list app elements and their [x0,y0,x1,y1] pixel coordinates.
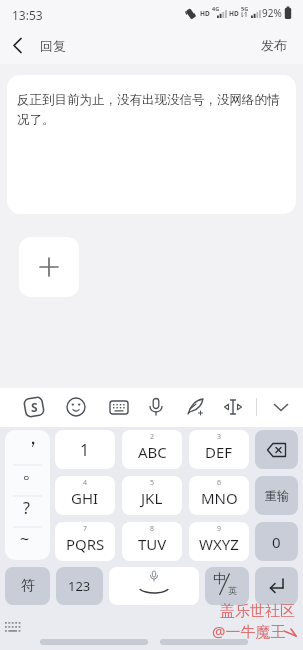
staticText: MNO [201,488,238,508]
staticText: 6 [217,478,222,488]
button[interactable] [6,34,30,58]
button[interactable]: 3 [189,430,249,469]
staticText: 3 [217,432,222,442]
button[interactable]: 5 [122,476,182,515]
staticText: 13:53 [12,7,43,23]
staticText: 5 [150,478,155,488]
button[interactable]: 7 [55,522,115,561]
button[interactable]: S [22,395,46,419]
staticText: PQRS [66,534,105,554]
staticText: 4 [83,478,88,488]
staticText: 5G [241,5,249,12]
button[interactable] [107,395,131,419]
staticText: 英 [228,585,237,596]
button[interactable] [64,395,88,419]
button[interactable]: 发布 [250,30,298,60]
button[interactable] [19,237,79,297]
button[interactable]: 1 [55,430,115,469]
staticText: ， [23,425,43,450]
staticText: HD [229,9,239,18]
button[interactable] [183,395,207,419]
staticText: GHI [71,488,99,508]
staticText: 重输 [265,488,289,503]
staticText: ABC [138,442,167,462]
staticText: 反正到目前为止，没有出现没信号，没网络的情 况了。 [17,92,280,128]
button[interactable] [144,395,168,419]
staticText: TUV [138,534,167,554]
staticText: 92% [262,6,282,20]
button[interactable]: 4 [55,476,115,515]
staticText: 盖乐世社区 [220,602,295,621]
staticText: @一牛魔王 [212,621,286,641]
staticText: 7 [83,524,88,534]
button[interactable]: 0 [255,522,298,561]
staticText: HD [200,9,210,18]
staticText: 2 [150,432,155,442]
button[interactable] [5,430,50,560]
staticText: 8 [150,524,155,534]
staticText: 0 [272,532,281,552]
staticText: ~ [20,528,30,550]
staticText: 。 [22,459,42,484]
button[interactable] [221,395,245,419]
button[interactable]: 9 [189,522,249,561]
button[interactable] [255,567,298,605]
button[interactable] [109,567,199,605]
staticText: 1 [80,439,90,461]
staticText: 回复 [40,38,66,54]
button[interactable]: 8 [122,522,182,561]
button[interactable]: 2 [122,430,182,469]
button[interactable]: 6 [189,476,249,515]
staticText: JKL [141,488,163,508]
button[interactable]: 符 [5,567,50,605]
button[interactable]: 123 [56,567,103,605]
button[interactable] [269,395,293,419]
staticText: 发布 [261,37,287,53]
staticText: 123 [68,577,91,595]
staticText: 符 [21,577,35,595]
staticText: 中 [213,570,226,586]
staticText: 9 [217,524,222,534]
button[interactable] [255,430,298,469]
staticText: WXYZ [199,534,239,554]
button[interactable]: 重输 [255,476,298,515]
staticText: ? [23,497,30,519]
staticText: 4G [212,5,220,12]
button[interactable]: 中 [205,567,249,605]
button[interactable]: 反正到目前为止，没有出现没信号，没网络的情 况了。 [7,75,296,214]
staticText: DEF [205,442,233,462]
staticText: S [31,399,38,415]
